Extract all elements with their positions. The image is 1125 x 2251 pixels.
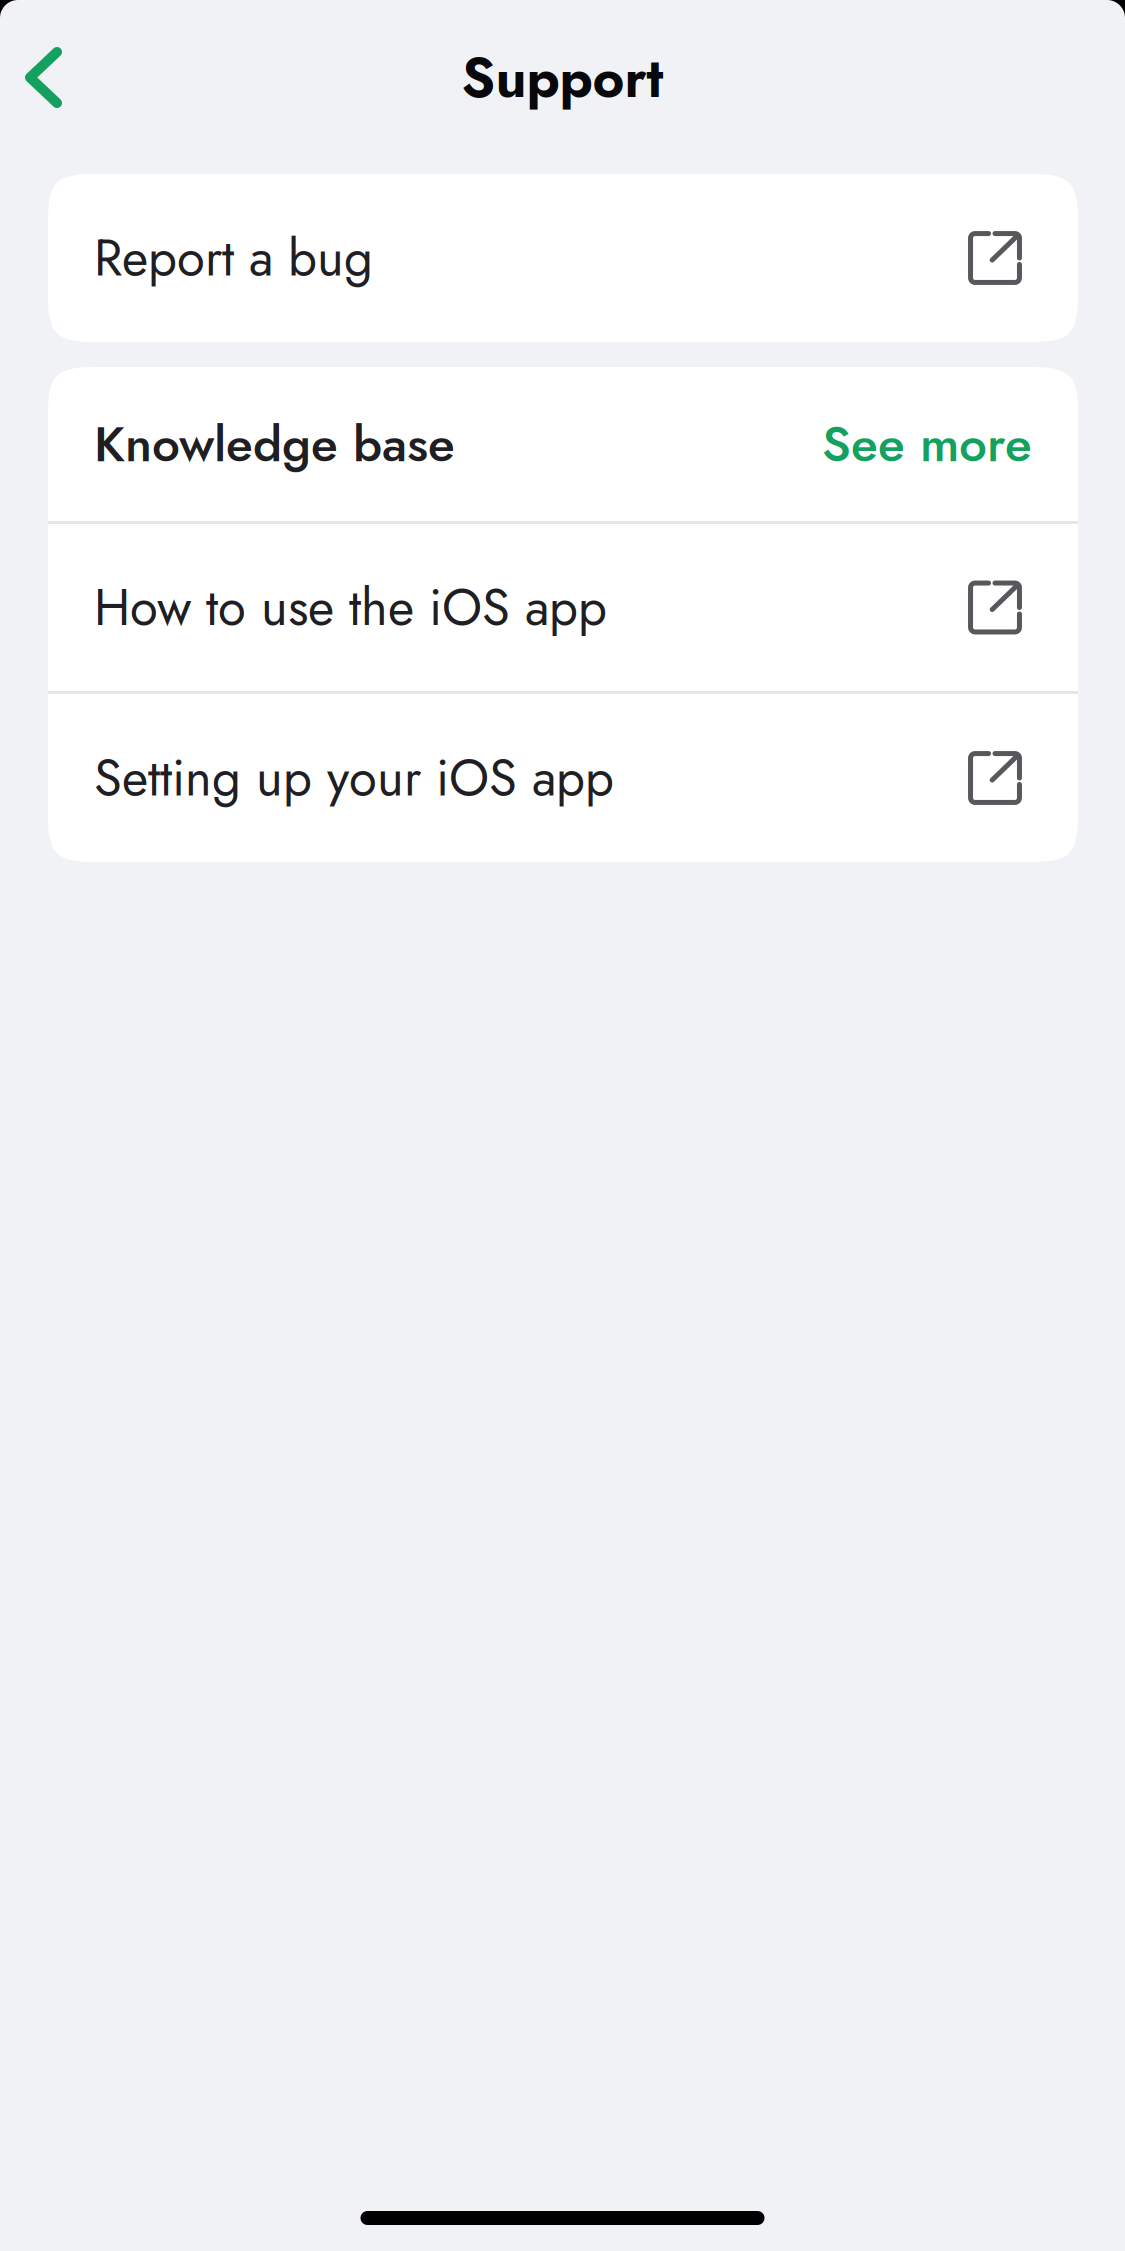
button[interactable]: Setting up your iOS app [48, 694, 1078, 862]
button[interactable]: Report a bug [48, 174, 1078, 342]
staticText: See more [822, 408, 1032, 480]
staticText: Knowledge base [94, 408, 455, 480]
button[interactable]: See more [792, 382, 1034, 506]
staticText: Report a bug [94, 221, 373, 295]
staticText: How to use the iOS app [94, 571, 607, 644]
staticText: Support [461, 38, 663, 117]
button[interactable]: How to use the iOS app [48, 524, 1078, 691]
staticText: Setting up your iOS app [94, 741, 614, 815]
button[interactable]: Back [0, 0, 90, 144]
